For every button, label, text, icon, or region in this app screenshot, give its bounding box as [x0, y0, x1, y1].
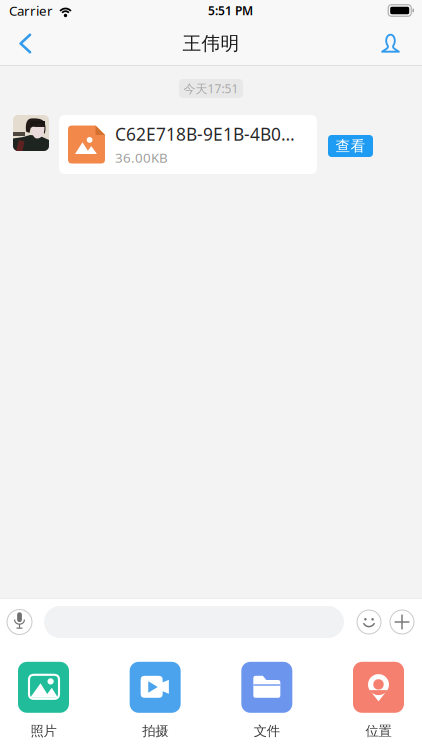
- button[interactable]: 文件: [241, 662, 292, 739]
- button[interactable]: Voice message: [7, 609, 32, 634]
- button[interactable]: Back: [0, 21, 48, 65]
- staticText: 5:51 PM: [208, 2, 253, 18]
- button[interactable]: 查看: [328, 135, 373, 157]
- button[interactable]: More options: [390, 610, 414, 634]
- button[interactable]: 照片: [18, 662, 69, 739]
- button[interactable]: 位置: [353, 662, 404, 739]
- staticText: 今天17:51: [183, 80, 238, 96]
- staticText: 拍摄: [142, 723, 168, 739]
- staticText: 查看: [335, 137, 365, 155]
- staticText: C62E718B-9E1B-4B09...: [115, 123, 299, 146]
- staticText: 照片: [30, 723, 56, 739]
- button[interactable]: Emoji: [357, 610, 381, 634]
- button[interactable]: Contact profile: [365, 21, 422, 65]
- staticText: 文件: [254, 723, 280, 739]
- staticText: 位置: [365, 723, 391, 739]
- staticText: 王伟明: [182, 32, 239, 55]
- staticText: Carrier: [9, 2, 53, 19]
- button[interactable]: 拍摄: [130, 662, 181, 739]
- staticText: 36.00KB: [115, 149, 168, 166]
